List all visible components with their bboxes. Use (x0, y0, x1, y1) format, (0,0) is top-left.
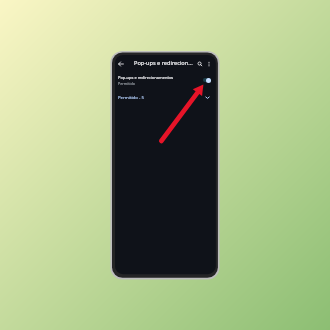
button[interactable]: Back (116, 59, 126, 69)
button[interactable]: Search (195, 59, 205, 69)
button[interactable]: Permitido - 5 (115, 92, 216, 102)
staticText: Pop-ups e redirecionamentos (118, 75, 174, 80)
button[interactable]: Pop-ups e redirecionamentos (115, 71, 216, 88)
button[interactable]: More options (204, 59, 214, 69)
staticText: Pop-ups e redirecion... (134, 59, 193, 67)
staticText: Permitido (118, 81, 136, 86)
staticText: Permitido - 5 (118, 94, 205, 100)
button[interactable]: Toggle pop-ups and redirects (203, 77, 211, 83)
